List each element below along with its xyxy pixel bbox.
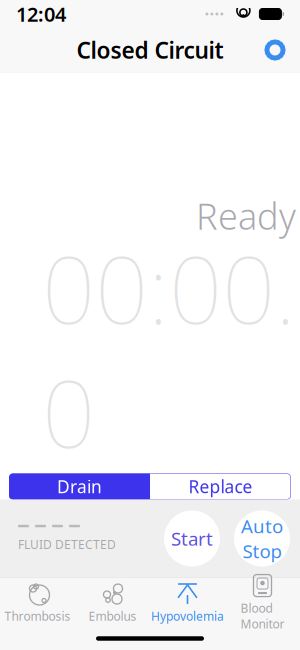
staticText: Replace (188, 475, 252, 498)
button[interactable]: Start (164, 510, 220, 566)
staticText: Ready (196, 192, 296, 240)
button[interactable]: Embolus (75, 578, 150, 627)
staticText: Blood Monitor (240, 600, 284, 632)
button[interactable]: Auto (234, 510, 290, 566)
button[interactable]: Hypovolemia (150, 578, 225, 627)
staticText: Stop (242, 538, 281, 563)
staticText: Embolus (88, 608, 136, 624)
staticText: 00:00.0 (42, 226, 296, 473)
button[interactable]: Settings (258, 33, 292, 67)
button[interactable]: Blood Monitor (225, 578, 300, 627)
button[interactable]: Replace (150, 473, 291, 499)
staticText: Auto (241, 514, 283, 538)
staticText: 12:04 (16, 1, 66, 27)
staticText: Drain (57, 475, 102, 498)
staticText: Thrombosis (4, 608, 70, 624)
staticText: Hypovolemia (151, 608, 224, 624)
button[interactable]: Drain (9, 473, 150, 499)
button[interactable]: Thrombosis (0, 578, 75, 627)
staticText: Start (171, 526, 213, 551)
staticText: FLUID DETECTED (18, 536, 116, 552)
staticText: Closed Circuit (76, 35, 223, 65)
